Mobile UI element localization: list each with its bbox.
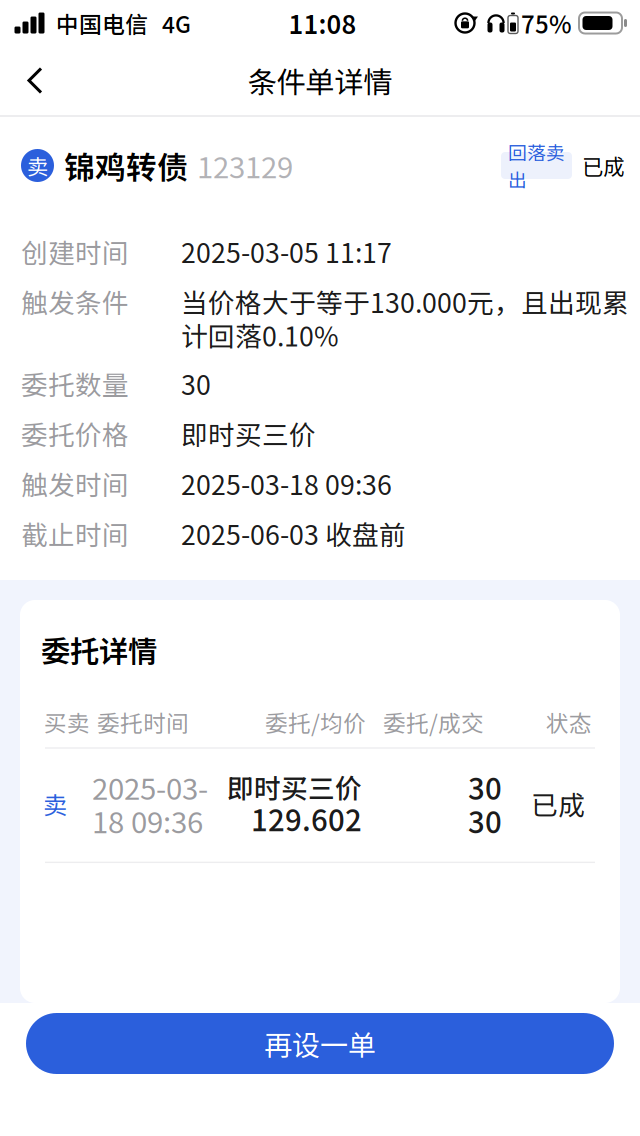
staticText: 创建时间 <box>21 232 129 271</box>
staticText: 即时买三价 <box>227 768 362 806</box>
staticText: 18 09:36 <box>92 799 203 842</box>
staticText: 卖 <box>27 150 48 181</box>
staticText: 委托时间 <box>97 705 189 738</box>
staticText: 30 <box>468 766 502 808</box>
staticText: 30 <box>181 364 211 403</box>
staticText: 当价格大于等于130.000元，且出现累计回落0.10% <box>181 282 629 354</box>
staticText: 75% <box>521 6 572 40</box>
staticText: 委托详情 <box>41 628 157 670</box>
staticText: 触发时间 <box>21 464 129 503</box>
staticText: 状态 <box>546 705 592 738</box>
staticText: 2025-03- <box>92 766 208 808</box>
staticText: 11:08 <box>288 5 356 41</box>
staticText: 买卖 <box>44 705 90 738</box>
staticText: 2025-06-03 收盘前 <box>181 514 406 553</box>
staticText: 再设一单 <box>264 1023 376 1064</box>
staticText: 30 <box>468 799 502 842</box>
staticText: 123129 <box>197 144 293 187</box>
button[interactable]: Back <box>0 51 66 109</box>
staticText: 已成 <box>531 784 585 823</box>
staticText: 回落卖出 <box>508 138 565 193</box>
staticText: 4G <box>162 7 191 39</box>
staticText: 已成 <box>582 150 624 181</box>
staticText: 锦鸡转债 <box>64 143 188 188</box>
button[interactable]: 再设一单 <box>26 1013 614 1074</box>
staticText: 中国电信 <box>56 7 148 39</box>
staticText: 委托/均价 <box>265 705 366 738</box>
staticText: 委托/成交 <box>383 705 484 738</box>
staticText: 即时买三价 <box>181 414 316 453</box>
staticText: 触发条件 <box>21 282 129 321</box>
staticText: 委托数量 <box>21 364 129 403</box>
staticText: 委托价格 <box>21 414 129 453</box>
staticText: 2025-03-05 11:17 <box>181 232 392 271</box>
staticText: 2025-03-18 09:36 <box>181 464 392 503</box>
staticText: 截止时间 <box>21 514 129 553</box>
staticText: 条件单详情 <box>247 59 392 102</box>
staticText: 129.602 <box>251 797 362 840</box>
staticText: 卖 <box>43 786 67 821</box>
